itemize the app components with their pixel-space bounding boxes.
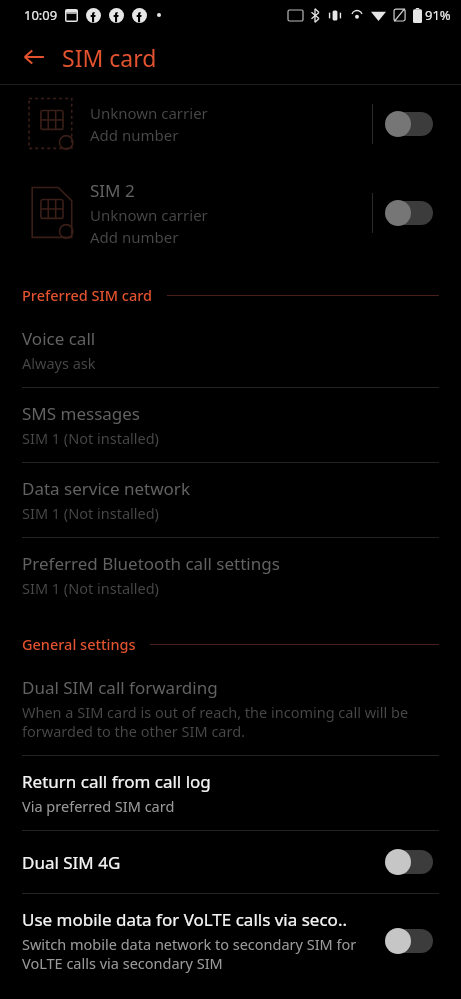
button[interactable]: Back: [12, 35, 56, 79]
staticText: SIM 1 (Not installed): [22, 503, 159, 523]
staticText: Unknown carrier: [90, 103, 208, 123]
staticText: Return call from call log: [22, 770, 211, 793]
button[interactable]: Use mobile data for VoLTE calls via seco…: [0, 894, 461, 987]
button[interactable]: Unknown carrier: [0, 85, 461, 163]
staticText: SIM card: [62, 42, 157, 73]
staticText: Switch mobile data network to secondary …: [22, 934, 371, 973]
staticText: When a SIM card is out of reach, the inc…: [22, 702, 439, 741]
button[interactable]: Toggle: [383, 845, 439, 879]
staticText: Unknown carrier: [90, 205, 208, 225]
button[interactable]: Dual SIM call forwarding: [0, 662, 461, 755]
staticText: SIM 1 (Not installed): [22, 428, 159, 448]
button[interactable]: Toggle: [383, 196, 439, 230]
button[interactable]: SMS messages: [0, 388, 461, 462]
staticText: 10:09: [24, 6, 58, 24]
staticText: Dual SIM 4G: [22, 851, 121, 874]
staticText: Add number: [90, 125, 179, 145]
staticText: Use mobile data for VoLTE calls via seco…: [22, 908, 347, 931]
button[interactable]: Toggle: [383, 107, 439, 141]
button[interactable]: Toggle: [383, 924, 439, 958]
button[interactable]: Voice call: [0, 313, 461, 387]
button[interactable]: Return call from call log: [0, 756, 461, 830]
button[interactable]: Data service network: [0, 463, 461, 537]
staticText: Voice call: [22, 327, 96, 350]
button[interactable]: Dual SIM 4G: [0, 831, 461, 893]
staticText: Dual SIM call forwarding: [22, 676, 218, 699]
staticText: General settings: [22, 634, 136, 654]
staticText: SIM 1 (Not installed): [22, 578, 159, 598]
button[interactable]: SIM 2: [0, 163, 461, 263]
staticText: 91%: [425, 6, 451, 24]
staticText: Data service network: [22, 477, 190, 500]
staticText: Preferred Bluetooth call settings: [22, 552, 280, 575]
button[interactable]: Preferred Bluetooth call settings: [0, 538, 461, 612]
staticText: SIM 2: [90, 179, 135, 202]
staticText: Preferred SIM card: [22, 285, 153, 305]
staticText: Via preferred SIM card: [22, 796, 175, 816]
staticText: SMS messages: [22, 402, 140, 425]
staticText: Add number: [90, 227, 179, 247]
staticText: Always ask: [22, 353, 96, 373]
